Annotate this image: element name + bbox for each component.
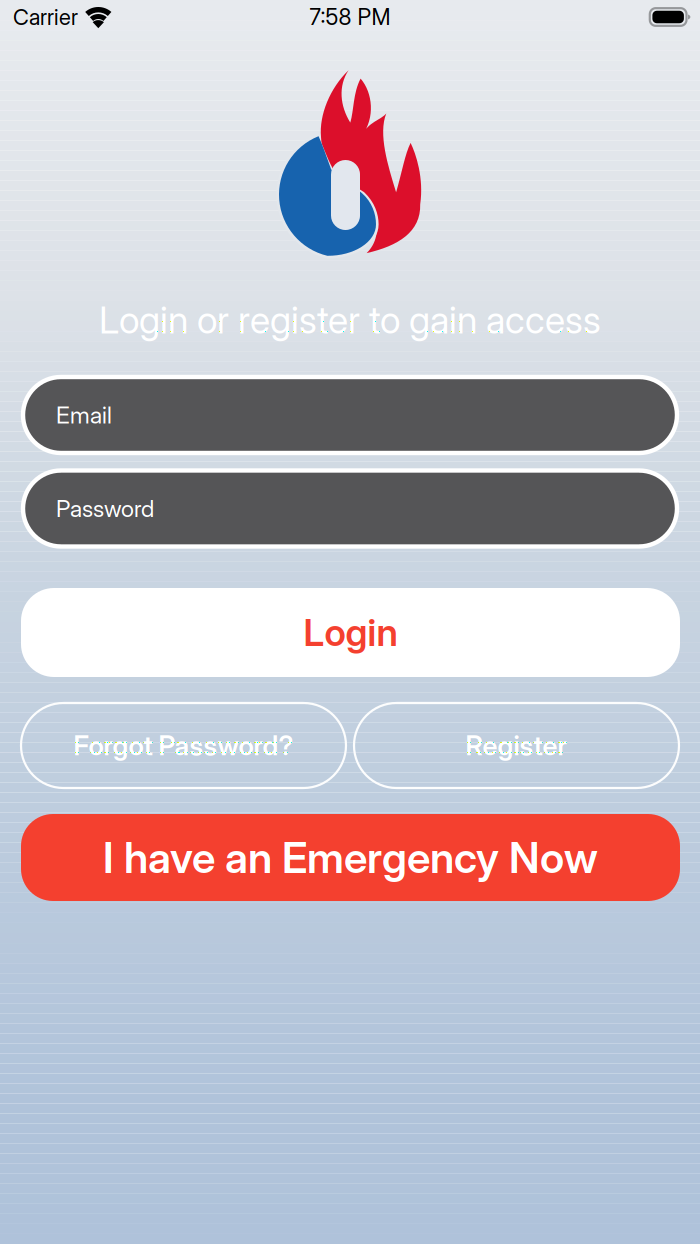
staticText: Login or register to gain access: [99, 297, 601, 343]
staticText: Forgot Password?: [73, 729, 293, 762]
staticText: Login: [303, 610, 397, 655]
button[interactable]: Login: [21, 588, 680, 677]
button[interactable]: Register: [354, 703, 679, 788]
staticText: Register: [465, 729, 567, 762]
staticText: Carrier: [13, 4, 78, 30]
staticText: Email: [56, 401, 112, 429]
button[interactable]: Email: [21, 375, 679, 455]
button[interactable]: Password: [21, 468, 679, 548]
button[interactable]: Forgot Password?: [21, 703, 346, 788]
button[interactable]: I have an Emergency Now: [21, 814, 680, 901]
staticText: 7:58 PM: [309, 4, 390, 30]
staticText: Password: [56, 494, 154, 523]
staticText: I have an Emergency Now: [103, 832, 598, 883]
